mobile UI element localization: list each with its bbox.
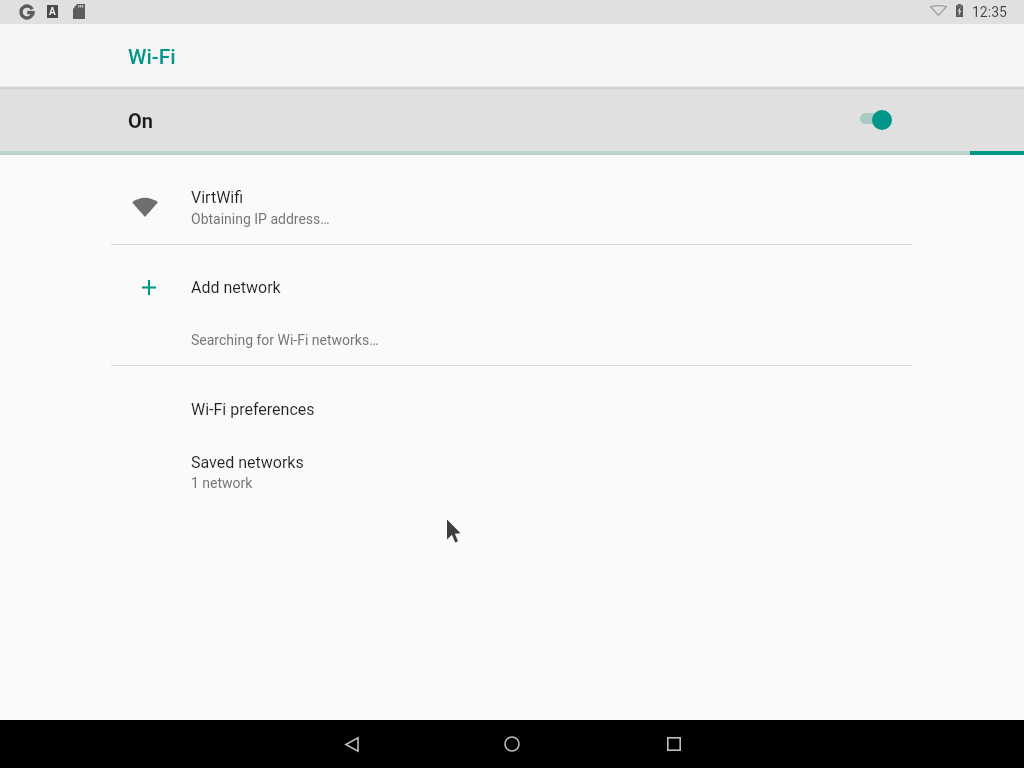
staticText: Searching for Wi-Fi networks… xyxy=(191,332,379,348)
staticText: Saved networks xyxy=(191,453,304,472)
button[interactable]: On xyxy=(0,88,1024,151)
staticText: 1 network xyxy=(191,475,253,491)
button[interactable]: VirtWifi xyxy=(0,156,1024,243)
staticText: VirtWifi xyxy=(191,188,244,207)
button[interactable]: Add network xyxy=(0,244,1024,318)
staticText: Add network xyxy=(191,278,281,297)
button[interactable]: Saved networks xyxy=(0,434,1024,504)
staticText: 12:35 xyxy=(972,4,1007,20)
button[interactable]: Home xyxy=(484,720,540,768)
button[interactable]: Wi-Fi preferences xyxy=(0,366,1024,434)
staticText: Wi-Fi preferences xyxy=(191,400,315,419)
button[interactable]: Back xyxy=(323,720,379,768)
button[interactable]: Recents xyxy=(646,720,702,768)
staticText: On xyxy=(128,109,154,132)
staticText: Wi-Fi xyxy=(128,45,176,70)
staticText: A xyxy=(49,6,56,18)
staticText: Obtaining IP address… xyxy=(191,211,330,227)
